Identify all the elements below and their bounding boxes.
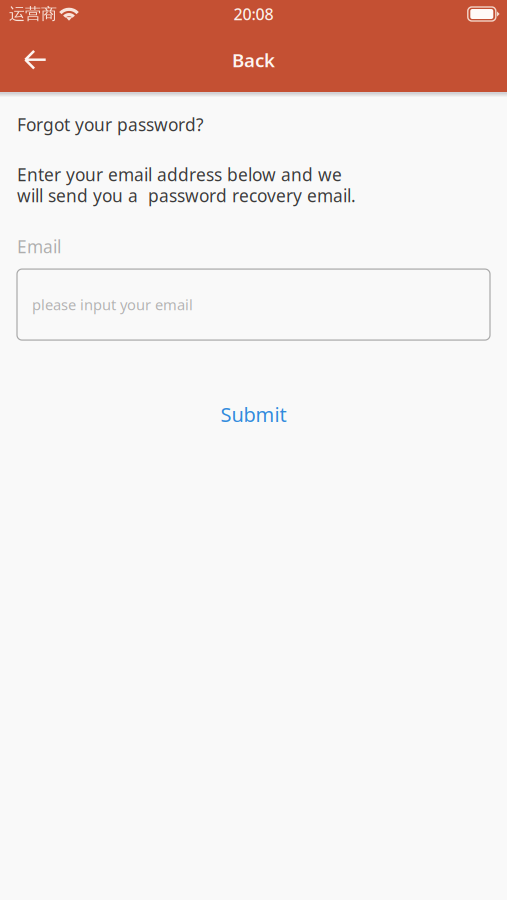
button[interactable]: Back [0, 35, 61, 84]
button[interactable]: Submit [200, 395, 306, 434]
staticText: Back [232, 48, 275, 72]
staticText: Submit [220, 401, 286, 428]
staticText: please input your email [32, 295, 193, 314]
staticText: Forgot your password? [17, 113, 204, 136]
staticText: 运营商 [9, 4, 57, 24]
staticText: 20:08 [233, 3, 273, 25]
staticText: Enter your email address below and we wi… [17, 163, 356, 207]
staticText: Email [17, 235, 61, 258]
